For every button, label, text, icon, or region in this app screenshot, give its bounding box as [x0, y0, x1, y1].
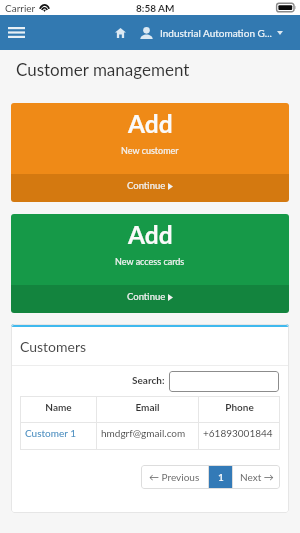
- staticText: Add: [128, 220, 173, 249]
- staticText: hmdgrf@gmail.com: [101, 427, 186, 439]
- staticText: 8:58 AM: [136, 2, 175, 14]
- button[interactable]: Industrial Automation G...: [140, 15, 283, 50]
- button[interactable]: Menu: [0, 15, 33, 50]
- staticText: Continue: [127, 180, 166, 191]
- staticText: Search:: [132, 374, 165, 386]
- button[interactable]: Search: [169, 371, 279, 392]
- staticText: 1: [218, 471, 224, 483]
- button[interactable]: Next →: [233, 465, 280, 489]
- staticText: Next →: [240, 471, 274, 483]
- staticText: Carrier: [5, 2, 36, 14]
- staticText: Industrial Automation G...: [160, 27, 272, 39]
- button[interactable]: ← Previous: [141, 465, 208, 489]
- button[interactable]: Add: [11, 103, 289, 202]
- button[interactable]: Add: [11, 214, 289, 313]
- staticText: ← Previous: [149, 471, 200, 483]
- staticText: New access cards: [115, 256, 185, 267]
- staticText: Email: [135, 401, 160, 413]
- button[interactable]: Home: [110, 15, 130, 50]
- staticText: New customer: [121, 145, 179, 156]
- staticText: +61893001844: [203, 427, 273, 439]
- staticText: Customer 1: [25, 427, 77, 439]
- staticText: Continue: [127, 291, 166, 302]
- button[interactable]: 1: [209, 465, 232, 489]
- staticText: Customer management: [16, 59, 190, 79]
- staticText: Name: [45, 401, 72, 413]
- staticText: Add: [128, 109, 173, 138]
- staticText: Phone: [225, 401, 254, 413]
- staticText: Customers: [20, 338, 87, 355]
